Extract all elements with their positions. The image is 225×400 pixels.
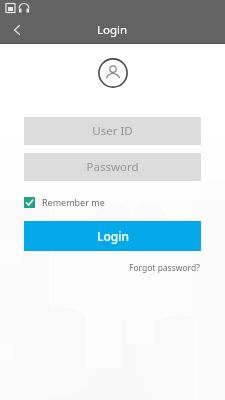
- staticText: Login: [97, 228, 129, 244]
- staticText: Password: [86, 159, 139, 175]
- staticText: Login: [97, 22, 128, 38]
- staticText: User ID: [92, 123, 133, 139]
- button[interactable]: Back: [0, 16, 34, 44]
- button[interactable]: Password: [24, 153, 201, 181]
- staticText: Remember me: [42, 196, 105, 208]
- button[interactable]: User ID: [24, 117, 201, 145]
- button[interactable]: Forgot password?: [128, 260, 201, 276]
- button[interactable]: Login: [24, 221, 201, 251]
- staticText: Forgot password?: [129, 262, 200, 274]
- button[interactable]: Remember me: [24, 196, 105, 208]
